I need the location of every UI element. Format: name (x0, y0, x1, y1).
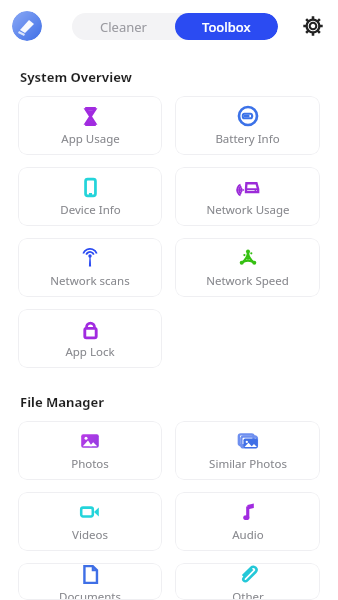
button[interactable]: Battery Info (175, 96, 320, 155)
button[interactable]: Network Speed (175, 238, 320, 297)
staticText: Similar Photos (209, 456, 287, 472)
staticText: Cleaner (100, 18, 147, 36)
button[interactable]: App Usage (18, 96, 162, 155)
button[interactable]: Cleaner (72, 13, 175, 40)
button[interactable]: App Lock (18, 309, 162, 368)
staticText: Battery Info (215, 131, 280, 147)
staticText: Audio (232, 527, 264, 543)
button[interactable]: Settings (300, 13, 326, 39)
button[interactable]: Audio (175, 492, 320, 551)
staticText: Videos (72, 527, 108, 543)
staticText: Network Speed (206, 273, 289, 289)
staticText: File Manager (20, 393, 105, 411)
button[interactable]: Documents (18, 563, 162, 600)
staticText: System Overview (20, 68, 132, 86)
staticText: Photos (71, 456, 109, 472)
button[interactable]: Videos (18, 492, 162, 551)
button[interactable]: Other (175, 563, 320, 600)
staticText: Device Info (60, 202, 121, 218)
staticText: App Usage (61, 131, 120, 147)
button[interactable]: Photos (18, 421, 162, 480)
button[interactable]: Similar Photos (175, 421, 320, 480)
staticText: Toolbox (202, 18, 251, 36)
button[interactable]: Network scans (18, 238, 162, 297)
button[interactable]: Toolbox (175, 13, 278, 40)
button[interactable]: Network Usage (175, 167, 320, 226)
staticText: Network Usage (206, 202, 290, 218)
staticText: App Lock (65, 344, 115, 360)
staticText: Network scans (50, 273, 130, 289)
staticText: Other (232, 589, 264, 600)
button[interactable]: App logo (12, 11, 42, 41)
staticText: Documents (59, 589, 121, 600)
button[interactable]: Device Info (18, 167, 162, 226)
